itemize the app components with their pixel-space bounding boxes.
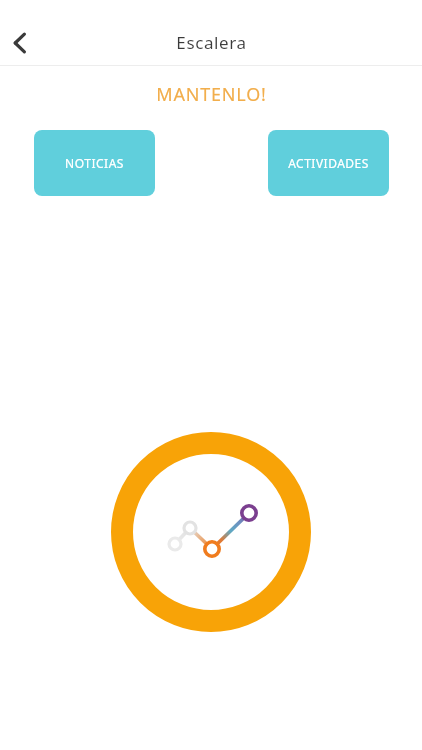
button[interactable]: ACTIVIDADES bbox=[268, 130, 389, 196]
staticText: ACTIVIDADES bbox=[288, 155, 369, 171]
staticText: MANTENLO! bbox=[156, 82, 267, 107]
button[interactable]: NOTICIAS bbox=[34, 130, 155, 196]
button[interactable]: Progress bbox=[111, 432, 311, 632]
button[interactable]: Back bbox=[0, 21, 44, 65]
staticText: NOTICIAS bbox=[65, 155, 124, 171]
staticText: Escalera bbox=[176, 31, 247, 54]
